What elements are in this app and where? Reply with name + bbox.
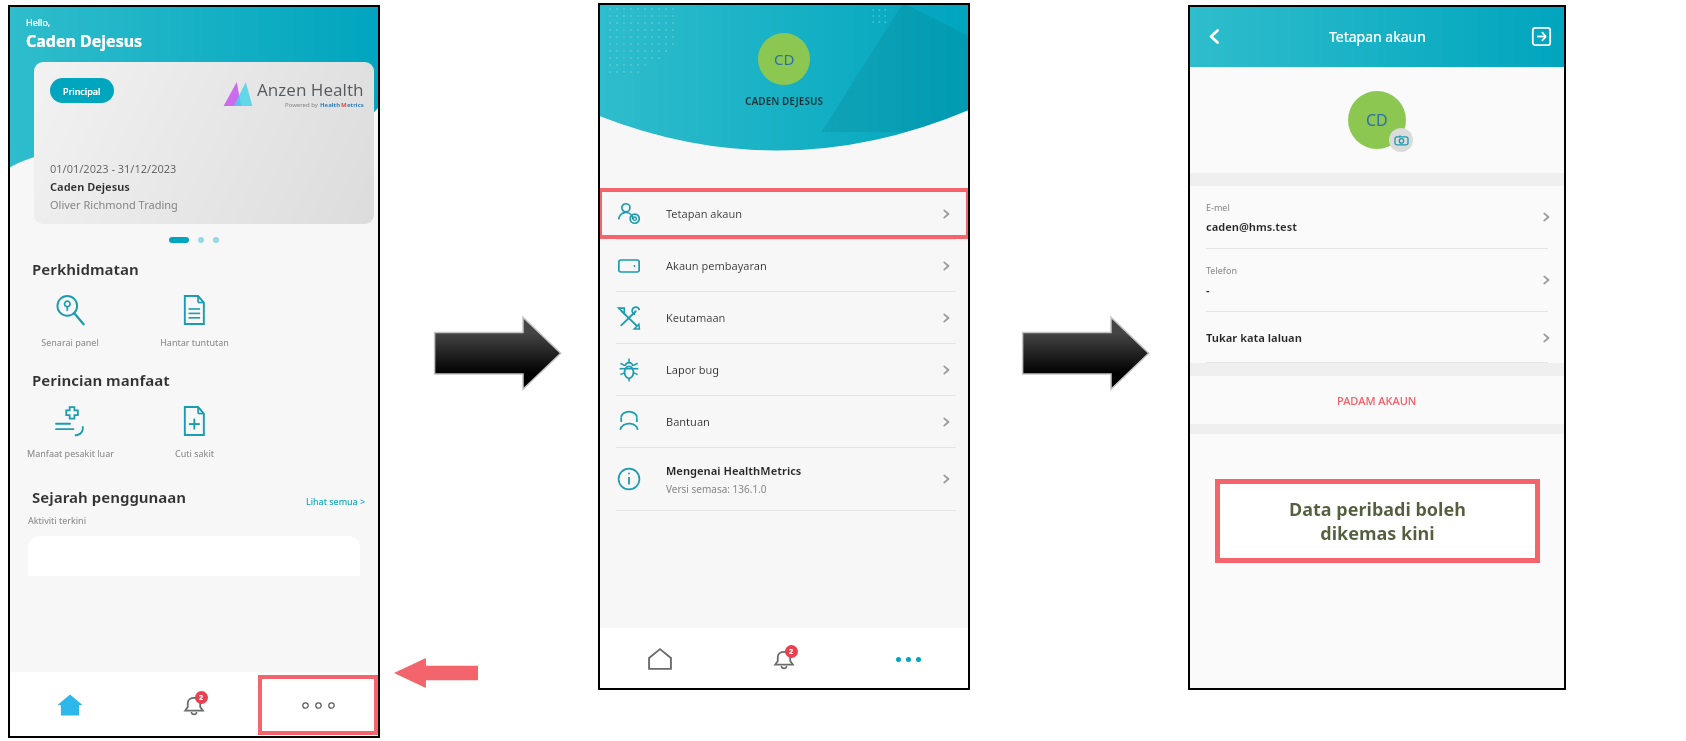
staticText: Caden Dejesus — [50, 179, 130, 194]
staticText: 2 — [199, 693, 204, 703]
button[interactable]: Bantuan — [598, 396, 970, 447]
staticText: Health — [320, 101, 341, 109]
staticText: Telefon — [1206, 264, 1237, 276]
staticText: E-mel — [1206, 201, 1230, 213]
staticText: 01/01/2023 - 31/12/2023 — [50, 161, 177, 176]
staticText: Manfaat pesakit luar — [27, 447, 114, 459]
button[interactable]: Notifications — [132, 672, 256, 738]
staticText: CADEN DEJESUS — [745, 94, 823, 108]
button[interactable]: Senarai panel — [8, 291, 132, 350]
staticText: Perkhidmatan — [32, 259, 139, 279]
staticText: Oliver Richmond Trading — [50, 197, 178, 212]
staticText: CD — [1366, 109, 1388, 131]
staticText: - — [1206, 282, 1210, 297]
button[interactable]: More — [258, 675, 378, 735]
button[interactable]: Lapor bug — [598, 344, 970, 395]
staticText: PADAM AKAUN — [1337, 393, 1417, 408]
staticText: Sejarah penggunaan — [32, 487, 187, 507]
button[interactable]: Change photo — [1389, 128, 1413, 152]
button[interactable]: Hantar tuntutan — [132, 291, 256, 350]
button[interactable]: Tetapan akaun — [598, 188, 970, 239]
staticText: caden@hms.test — [1206, 219, 1297, 234]
staticText: Aktiviti terkini — [28, 514, 86, 526]
button[interactable]: Home — [8, 672, 132, 738]
staticText: Bantuan — [666, 414, 710, 429]
staticText: Principal — [63, 85, 101, 97]
button[interactable]: Principal — [34, 62, 374, 224]
button[interactable]: Tukar kata laluan — [1188, 312, 1566, 362]
staticText: Cuti sakit — [175, 447, 214, 459]
button[interactable]: Lihat semua > — [306, 495, 366, 507]
staticText: M — [341, 101, 347, 109]
staticText: Senarai panel — [41, 336, 99, 348]
staticText: Tetapan akaun — [666, 206, 743, 221]
staticText: Lapor bug — [666, 362, 720, 377]
staticText: Caden Dejesus — [26, 30, 143, 52]
staticText: Perincian manfaat — [32, 370, 170, 390]
button[interactable]: Mengenai HealthMetrics — [598, 448, 970, 510]
button[interactable]: More — [846, 628, 970, 690]
staticText: Versi semasa: 136.1.0 — [666, 482, 767, 496]
button[interactable]: Telefon — [1188, 249, 1566, 311]
staticText: Lihat semua > — [306, 495, 366, 507]
staticText: Hantar tuntutan — [160, 336, 229, 348]
button[interactable]: E-mel — [1188, 186, 1566, 248]
button[interactable]: Cuti sakit — [132, 402, 256, 461]
button[interactable]: Keutamaan — [598, 292, 970, 343]
staticText: etrics — [347, 101, 364, 109]
button[interactable]: Akaun pembayaran — [598, 240, 970, 291]
staticText: Tukar kata laluan — [1206, 330, 1302, 345]
staticText: 2 — [789, 647, 794, 657]
button[interactable]: PADAM AKAUN — [1188, 376, 1566, 424]
staticText: Akaun pembayaran — [666, 258, 767, 273]
staticText: Powered by — [285, 101, 320, 109]
staticText: Hello, — [26, 16, 51, 28]
staticText: Data peribadi boleh dikemas kini — [1289, 497, 1466, 545]
staticText: Anzen Health — [257, 78, 364, 101]
button[interactable]: Home — [598, 628, 722, 690]
staticText: Tetapan akaun — [1329, 27, 1426, 46]
staticText: Keutamaan — [666, 310, 726, 325]
button[interactable]: Notifications — [722, 628, 846, 690]
staticText: Mengenai HealthMetrics — [666, 463, 802, 478]
button[interactable]: Manfaat pesakit luar — [8, 402, 132, 461]
button[interactable]: Principal — [50, 78, 114, 103]
staticText: CD — [774, 49, 795, 69]
button[interactable]: Back — [1196, 18, 1232, 54]
button[interactable]: Log out — [1526, 21, 1556, 51]
